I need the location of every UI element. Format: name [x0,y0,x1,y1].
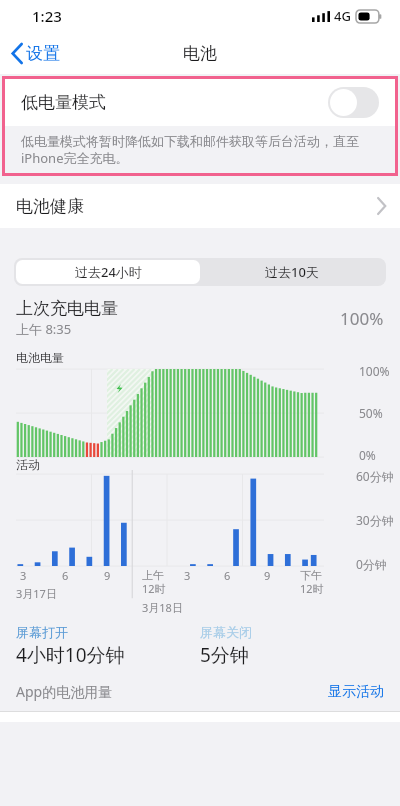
button[interactable]: 低电量模式开关 [328,87,379,118]
staticText: 3 [184,568,191,583]
staticText: 0分钟 [356,556,387,572]
staticText: 下午 12时 [300,568,324,596]
staticText: 过去10天 [265,263,319,281]
staticText: 显示活动 [328,683,384,701]
button[interactable]: 过去24小时 [16,260,200,284]
button[interactable]: 过去10天 [200,260,384,284]
button[interactable]: 电池健康 [0,184,400,228]
button[interactable]: 设置 [0,39,70,68]
staticText: 低电量模式 [21,92,328,113]
staticText: 3 [20,568,27,583]
staticText: 4小时10分钟 [16,642,125,668]
staticText: 屏幕打开 [16,624,68,640]
staticText: 活动 [16,457,40,472]
staticText: 9 [264,568,271,583]
staticText: 低电量模式将暂时降低如下载和邮件获取等后台活动，直至 iPhone完全充电。 [21,133,359,167]
staticText: 6 [62,568,69,583]
staticText: 0% [359,447,376,463]
staticText: 电池健康 [16,196,377,217]
staticText: 100% [359,363,390,379]
staticText: 50% [359,405,383,421]
staticText: 1:23 [32,6,62,26]
button[interactable]: 显示活动 [328,683,384,701]
staticText: 设置 [26,43,60,64]
staticText: 屏幕关闭 [200,624,252,640]
staticText: 6 [224,568,231,583]
staticText: App的电池用量 [16,682,328,701]
staticText: 9 [104,568,111,583]
staticText: 过去24小时 [75,263,142,281]
staticText: 100% [340,307,384,330]
staticText: 上午 8:35 [16,320,72,338]
staticText: 上次充电电量 [16,298,118,319]
staticText: 3月18日 [142,600,183,615]
staticText: 电池 [183,43,217,64]
staticText: 5分钟 [200,642,249,668]
button[interactable]: 低电量模式 [5,79,395,126]
staticText: 60分钟 [356,468,394,484]
staticText: 电池电量 [16,350,64,365]
staticText: 4G [334,7,351,25]
staticText: 上午 12时 [142,568,166,596]
staticText: 30分钟 [356,512,394,528]
staticText: 3月17日 [16,586,57,601]
